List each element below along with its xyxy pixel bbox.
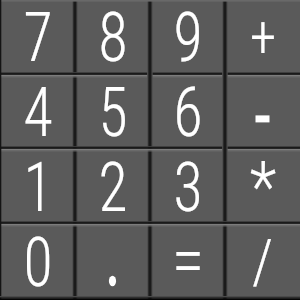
staticText: 1 xyxy=(23,148,53,223)
staticText: / xyxy=(251,225,274,298)
staticText: 2 xyxy=(98,148,128,223)
staticText: 3 xyxy=(173,148,203,223)
staticText: 0 xyxy=(23,223,53,298)
button[interactable]: Nine xyxy=(150,0,225,75)
staticText: 5 xyxy=(98,73,128,148)
button[interactable]: Four xyxy=(0,75,75,150)
button[interactable]: Three xyxy=(150,150,225,225)
button[interactable]: Seven xyxy=(0,0,75,75)
button[interactable]: Plus xyxy=(225,0,300,75)
staticText: 6 xyxy=(173,73,203,148)
staticText: + xyxy=(250,1,276,71)
staticText: 7 xyxy=(23,0,53,73)
button[interactable]: Divide xyxy=(225,225,300,300)
button[interactable]: Eight xyxy=(75,0,150,75)
staticText: * xyxy=(250,146,276,221)
staticText: 4 xyxy=(23,73,53,148)
staticText: 9 xyxy=(173,0,203,73)
button[interactable]: Multiply xyxy=(225,150,300,225)
button[interactable]: Six xyxy=(150,75,225,150)
button[interactable]: Equals xyxy=(150,225,225,300)
staticText: = xyxy=(172,219,204,294)
staticText: 8 xyxy=(98,0,128,73)
button[interactable]: Zero xyxy=(0,225,75,300)
button[interactable]: Five xyxy=(75,75,150,150)
button[interactable]: Minus xyxy=(225,75,300,150)
button[interactable]: Decimal point xyxy=(75,225,150,300)
button[interactable]: One xyxy=(0,150,75,225)
button[interactable]: Two xyxy=(75,150,150,225)
